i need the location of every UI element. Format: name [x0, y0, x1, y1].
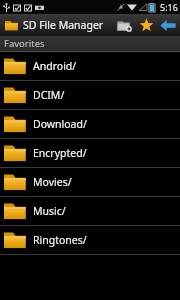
- button[interactable]: DCIM/: [0, 81, 180, 109]
- staticText: Ringtones/: [33, 233, 87, 247]
- button[interactable]: Back: [158, 15, 178, 35]
- button[interactable]: Download/: [0, 110, 180, 138]
- staticText: DCIM/: [33, 88, 65, 102]
- staticText: SD File Manager: [23, 18, 104, 32]
- button[interactable]: Favorites: [136, 15, 156, 35]
- staticText: Favorites: [4, 37, 45, 50]
- staticText: 5:16: [160, 1, 178, 13]
- staticText: Encrypted/: [33, 146, 87, 160]
- staticText: Movies/: [33, 175, 72, 189]
- button[interactable]: New folder: [114, 15, 134, 35]
- button[interactable]: Ringtones/: [0, 226, 180, 254]
- button[interactable]: Android/: [0, 52, 180, 80]
- staticText: Download/: [33, 117, 87, 131]
- button[interactable]: App icon: [4, 18, 19, 33]
- button[interactable]: Encrypted/: [0, 139, 180, 167]
- button[interactable]: Movies/: [0, 168, 180, 196]
- staticText: Android/: [33, 59, 77, 73]
- staticText: Music/: [33, 204, 66, 218]
- button[interactable]: Music/: [0, 197, 180, 225]
